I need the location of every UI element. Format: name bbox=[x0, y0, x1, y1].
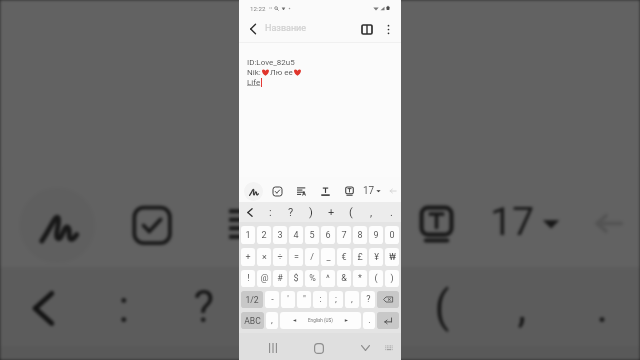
staticText: + bbox=[328, 206, 335, 219]
button[interactable]: Text formatting bbox=[316, 182, 335, 201]
staticText: € bbox=[341, 252, 347, 263]
button[interactable]: , bbox=[266, 312, 278, 329]
button[interactable]: Hide keyboard bbox=[358, 341, 372, 355]
button[interactable]: More options bbox=[379, 20, 397, 38]
button[interactable]: 17 bbox=[490, 188, 561, 259]
button[interactable]: Reading view bbox=[358, 20, 376, 38]
button[interactable]: ) bbox=[245, 267, 324, 346]
staticText: = bbox=[294, 252, 299, 263]
staticText: ) bbox=[390, 273, 394, 284]
button[interactable]: / bbox=[305, 248, 319, 266]
button[interactable] bbox=[0, 267, 83, 346]
button[interactable]: ( bbox=[341, 202, 361, 222]
staticText: 3 bbox=[277, 230, 283, 241]
staticText: @ bbox=[260, 273, 269, 284]
button[interactable]: 3 bbox=[273, 226, 287, 244]
button[interactable]: ) bbox=[385, 270, 399, 287]
staticText: 1 bbox=[245, 230, 251, 241]
staticText: 17 bbox=[363, 185, 375, 197]
button[interactable]: " bbox=[297, 291, 311, 308]
button[interactable] bbox=[239, 202, 260, 222]
button[interactable]: 4 bbox=[289, 226, 303, 244]
button[interactable]: ₩ bbox=[385, 248, 399, 266]
button[interactable]: - bbox=[265, 291, 279, 308]
button[interactable]: Undo bbox=[386, 184, 400, 198]
button[interactable]: @ bbox=[257, 270, 271, 287]
button[interactable]: ( bbox=[369, 270, 383, 287]
staticText: 1/2 bbox=[245, 295, 259, 305]
staticText: ( bbox=[349, 206, 353, 219]
button[interactable]: = bbox=[289, 248, 303, 266]
button[interactable]: . bbox=[363, 312, 375, 329]
button[interactable]: Backspace bbox=[377, 291, 399, 308]
button[interactable]: : bbox=[83, 267, 166, 346]
button[interactable]: 8 bbox=[353, 226, 367, 244]
button[interactable]: ÷ bbox=[273, 248, 287, 266]
button[interactable]: ^ bbox=[321, 270, 335, 287]
button[interactable]: ¥ bbox=[369, 248, 383, 266]
button[interactable]: & bbox=[337, 270, 351, 287]
staticText: : bbox=[319, 294, 322, 305]
button[interactable]: Handwriting bbox=[244, 182, 263, 201]
button[interactable]: ; bbox=[329, 291, 343, 308]
button[interactable]: : bbox=[313, 291, 327, 308]
button[interactable]: English (US) bbox=[280, 312, 361, 329]
button[interactable]: , bbox=[345, 291, 359, 308]
button[interactable]: Home bbox=[312, 341, 326, 355]
button[interactable]: Back bbox=[245, 21, 261, 37]
button[interactable]: Change keyboard bbox=[382, 341, 395, 354]
button[interactable]: ? bbox=[281, 202, 301, 222]
button[interactable]: Text formatting bbox=[304, 188, 379, 263]
staticText: 4 bbox=[293, 230, 299, 241]
button[interactable]: Recent apps bbox=[266, 341, 280, 355]
button[interactable]: # bbox=[273, 270, 287, 287]
staticText: , bbox=[271, 315, 273, 326]
button[interactable]: + bbox=[324, 267, 403, 346]
staticText: ÷ bbox=[277, 252, 283, 263]
button[interactable]: ( bbox=[403, 267, 482, 346]
button[interactable]: , bbox=[482, 267, 561, 346]
button[interactable]: Handwriting bbox=[20, 188, 95, 263]
button[interactable]: * bbox=[353, 270, 367, 287]
button[interactable]: , bbox=[361, 202, 381, 222]
button[interactable]: Paragraph style bbox=[209, 188, 284, 263]
button[interactable]: £ bbox=[353, 248, 367, 266]
button[interactable]: Text style bbox=[340, 182, 359, 201]
button[interactable]: Checklist bbox=[268, 182, 287, 201]
button[interactable]: % bbox=[305, 270, 319, 287]
button[interactable]: 2 bbox=[257, 226, 271, 244]
button[interactable]: 6 bbox=[321, 226, 335, 244]
staticText: ^ bbox=[326, 273, 330, 284]
button[interactable]: + bbox=[241, 248, 255, 266]
button[interactable]: ' bbox=[281, 291, 295, 308]
button[interactable]: € bbox=[337, 248, 351, 266]
button[interactable]: 1/2 bbox=[241, 291, 263, 308]
button[interactable]: Checklist bbox=[115, 188, 190, 263]
button[interactable]: _ bbox=[321, 248, 335, 266]
button[interactable]: ! bbox=[241, 270, 255, 287]
button[interactable]: ? bbox=[166, 267, 245, 346]
button[interactable]: 9 bbox=[369, 226, 383, 244]
button[interactable]: 1 bbox=[241, 226, 255, 244]
button[interactable]: 7 bbox=[337, 226, 351, 244]
button[interactable]: + bbox=[321, 202, 341, 222]
button[interactable]: : bbox=[260, 202, 281, 222]
button[interactable]: Enter bbox=[377, 312, 399, 329]
button[interactable]: × bbox=[257, 248, 271, 266]
button[interactable]: . bbox=[561, 267, 640, 346]
button[interactable]: 0 bbox=[385, 226, 399, 244]
button[interactable]: Text style bbox=[399, 188, 474, 263]
staticText: : bbox=[118, 283, 130, 334]
button[interactable]: ? bbox=[361, 291, 375, 308]
button[interactable]: $ bbox=[289, 270, 303, 287]
button[interactable]: 17 bbox=[363, 182, 381, 200]
staticText: , bbox=[370, 206, 373, 219]
button[interactable]: ) bbox=[301, 202, 321, 222]
button[interactable]: 5 bbox=[305, 226, 319, 244]
button[interactable]: . bbox=[381, 202, 401, 222]
staticText: English (US) bbox=[308, 318, 333, 323]
button[interactable]: Paragraph style bbox=[292, 182, 311, 201]
button[interactable]: ABC bbox=[241, 312, 264, 329]
staticText: . bbox=[390, 206, 393, 219]
